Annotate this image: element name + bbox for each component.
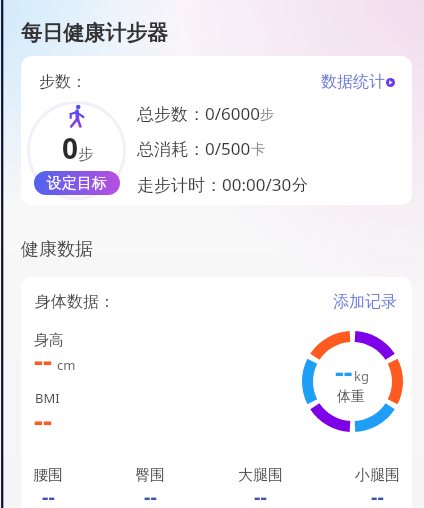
- staticText: 身高: [34, 331, 64, 350]
- staticText: 0: [62, 129, 79, 167]
- button[interactable]: 小腿围: [355, 466, 400, 493]
- button[interactable]: 腰围: [33, 466, 63, 493]
- staticText: --: [144, 483, 157, 508]
- button[interactable]: 臀围: [135, 466, 165, 493]
- staticText: --: [34, 341, 52, 379]
- staticText: --: [335, 353, 353, 390]
- staticText: --: [371, 483, 384, 508]
- staticText: 大腿围: [238, 466, 283, 485]
- button[interactable]: 数据统计: [321, 72, 395, 92]
- staticText: 步: [260, 106, 274, 124]
- staticText: 步数：: [39, 72, 87, 92]
- button[interactable]: 大腿围: [238, 466, 283, 493]
- staticText: 00:00/30: [222, 173, 292, 196]
- staticText: 腰围: [33, 466, 63, 485]
- staticText: 设定目标: [47, 174, 107, 193]
- staticText: --: [34, 401, 52, 439]
- button[interactable]: 添加记录: [333, 292, 397, 312]
- staticText: 身体数据：: [35, 292, 115, 312]
- staticText: 0/500: [205, 137, 251, 160]
- staticText: 卡: [251, 141, 265, 159]
- staticText: kg: [354, 367, 369, 385]
- staticText: --: [42, 483, 55, 508]
- staticText: 臀围: [135, 466, 165, 485]
- staticText: 步: [78, 145, 93, 164]
- staticText: cm: [57, 356, 76, 374]
- staticText: 分: [292, 175, 308, 195]
- staticText: 每日健康计步器: [21, 20, 168, 46]
- staticText: 健康数据: [21, 238, 93, 261]
- staticText: 数据统计: [321, 72, 385, 92]
- staticText: --: [254, 483, 267, 508]
- staticText: 0/6000: [205, 102, 260, 125]
- staticText: 总消耗：: [137, 139, 205, 160]
- button[interactable]: 设定目标: [34, 171, 120, 195]
- staticText: BMI: [35, 389, 60, 407]
- staticText: 总步数：: [137, 104, 205, 125]
- staticText: 添加记录: [333, 292, 397, 312]
- other: 数据统计: [386, 78, 395, 87]
- staticText: 小腿围: [355, 466, 400, 485]
- staticText: 体重: [337, 388, 365, 406]
- staticText: 走步计时：: [137, 175, 222, 196]
